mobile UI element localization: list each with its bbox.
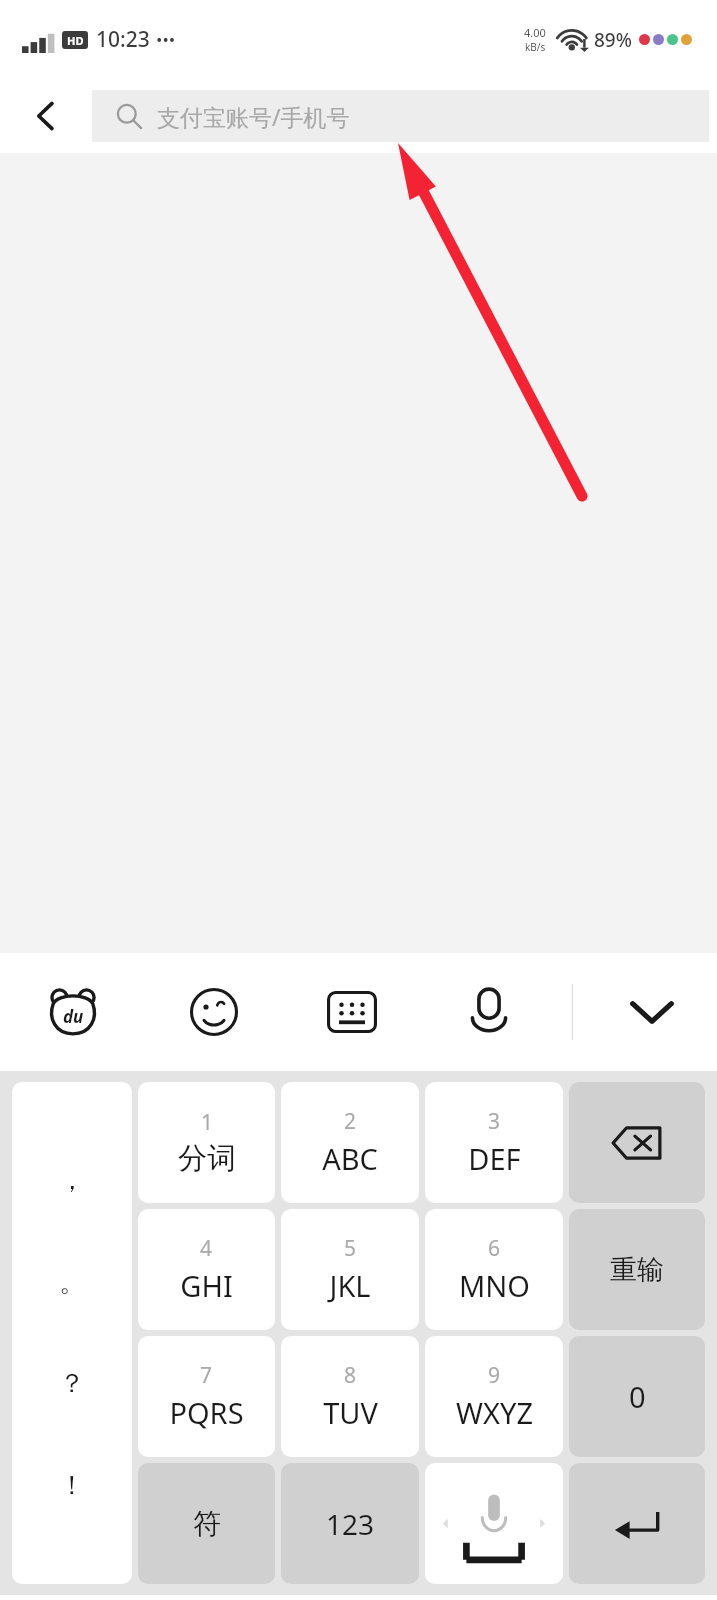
button[interactable]: 支付宝账号/手机号 (92, 90, 709, 142)
staticText: TUV (323, 1393, 378, 1432)
button[interactable]: 5 (281, 1209, 419, 1330)
staticText: kB/s (525, 40, 546, 54)
staticText: 1 (201, 1108, 214, 1137)
button[interactable]: 重输 (569, 1209, 705, 1330)
button[interactable]: 4 (138, 1209, 275, 1330)
staticText: 重输 (610, 1253, 664, 1287)
button[interactable]: 1 (138, 1082, 275, 1203)
staticText: 。 (59, 1266, 85, 1299)
staticText: 支付宝账号/手机号 (157, 101, 350, 132)
staticText: HD (67, 33, 84, 48)
button[interactable]: Back (0, 78, 92, 153)
button[interactable]: 8 (281, 1336, 419, 1457)
staticText: 6 (488, 1234, 501, 1263)
button[interactable]: 123 (281, 1463, 419, 1584)
staticText: 123 (326, 1505, 375, 1543)
staticText: 9 (488, 1361, 501, 1390)
button[interactable]: Voice input (420, 953, 557, 1071)
staticText: WXYZ (456, 1393, 533, 1432)
staticText: ABC (322, 1139, 378, 1178)
button[interactable]: 符 (138, 1463, 275, 1584)
button[interactable]: Emoji (145, 953, 283, 1071)
staticText: 0 (629, 1377, 646, 1416)
button[interactable]: Baidu input (0, 953, 145, 1071)
staticText: 89% (594, 27, 632, 53)
staticText: 3 (488, 1107, 501, 1136)
staticText: 8 (344, 1361, 357, 1390)
staticText: DEF (468, 1139, 521, 1178)
button[interactable]: 6 (425, 1209, 563, 1330)
staticText: JKL (329, 1266, 371, 1305)
staticText: 5 (344, 1234, 357, 1263)
staticText: du (63, 1005, 84, 1028)
button[interactable]: Backspace (569, 1082, 705, 1203)
button[interactable]: 2 (281, 1082, 419, 1203)
staticText: PQRS (169, 1393, 244, 1432)
staticText: 10:23 (96, 25, 150, 54)
staticText: ， (59, 1164, 85, 1197)
staticText: ？ (59, 1367, 85, 1400)
button[interactable]: 7 (138, 1336, 275, 1457)
button[interactable]: 3 (425, 1082, 563, 1203)
button[interactable]: Hide keyboard (587, 953, 717, 1071)
staticText: 4.00 (524, 25, 546, 40)
button[interactable]: Enter (569, 1463, 705, 1584)
staticText: 7 (200, 1361, 213, 1390)
staticText: ••• (156, 28, 176, 51)
staticText: 分词 (178, 1140, 236, 1177)
staticText: GHI (180, 1266, 233, 1305)
button[interactable]: ， (12, 1082, 132, 1584)
staticText: ！ (59, 1469, 85, 1502)
staticText: 4 (200, 1234, 213, 1263)
button[interactable]: Space (425, 1463, 563, 1584)
staticText: 2 (344, 1107, 357, 1136)
button[interactable]: 9 (425, 1336, 563, 1457)
staticText: MNO (459, 1266, 530, 1305)
button[interactable]: 0 (569, 1336, 705, 1457)
staticText: 符 (193, 1506, 221, 1541)
button[interactable]: Keyboard layout (283, 953, 420, 1071)
